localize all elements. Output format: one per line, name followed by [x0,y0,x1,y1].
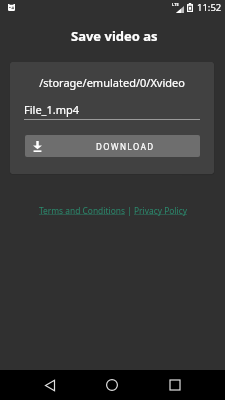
button[interactable]: Privacy Policy [134,205,187,216]
staticText: Save video as [71,27,158,43]
staticText: File_1.mp4 [24,102,80,117]
button[interactable]: Terms and Conditions [39,205,125,216]
button[interactable]: File_1.mp4 [24,102,200,120]
staticText: LTE [172,2,179,7]
button[interactable]: DOWNLOAD [25,135,200,157]
staticText: /storage/emulated/0/Xvideo [10,75,214,90]
button[interactable]: Back [32,370,68,400]
staticText: 11:52 [197,1,222,14]
button[interactable]: Home [94,370,130,400]
staticText: | [125,205,134,216]
staticText: DOWNLOAD [96,141,155,152]
button[interactable]: Recents [157,370,193,400]
